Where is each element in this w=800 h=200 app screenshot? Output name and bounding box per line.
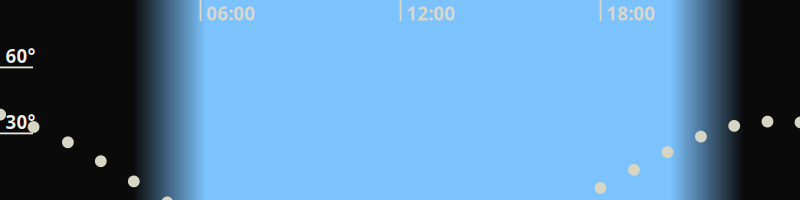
staticText: 30°: [6, 109, 36, 134]
staticText: 18:00: [606, 1, 655, 26]
staticText: 60°: [6, 43, 36, 68]
staticText: 06:00: [206, 1, 255, 26]
staticText: 12:00: [406, 1, 455, 26]
